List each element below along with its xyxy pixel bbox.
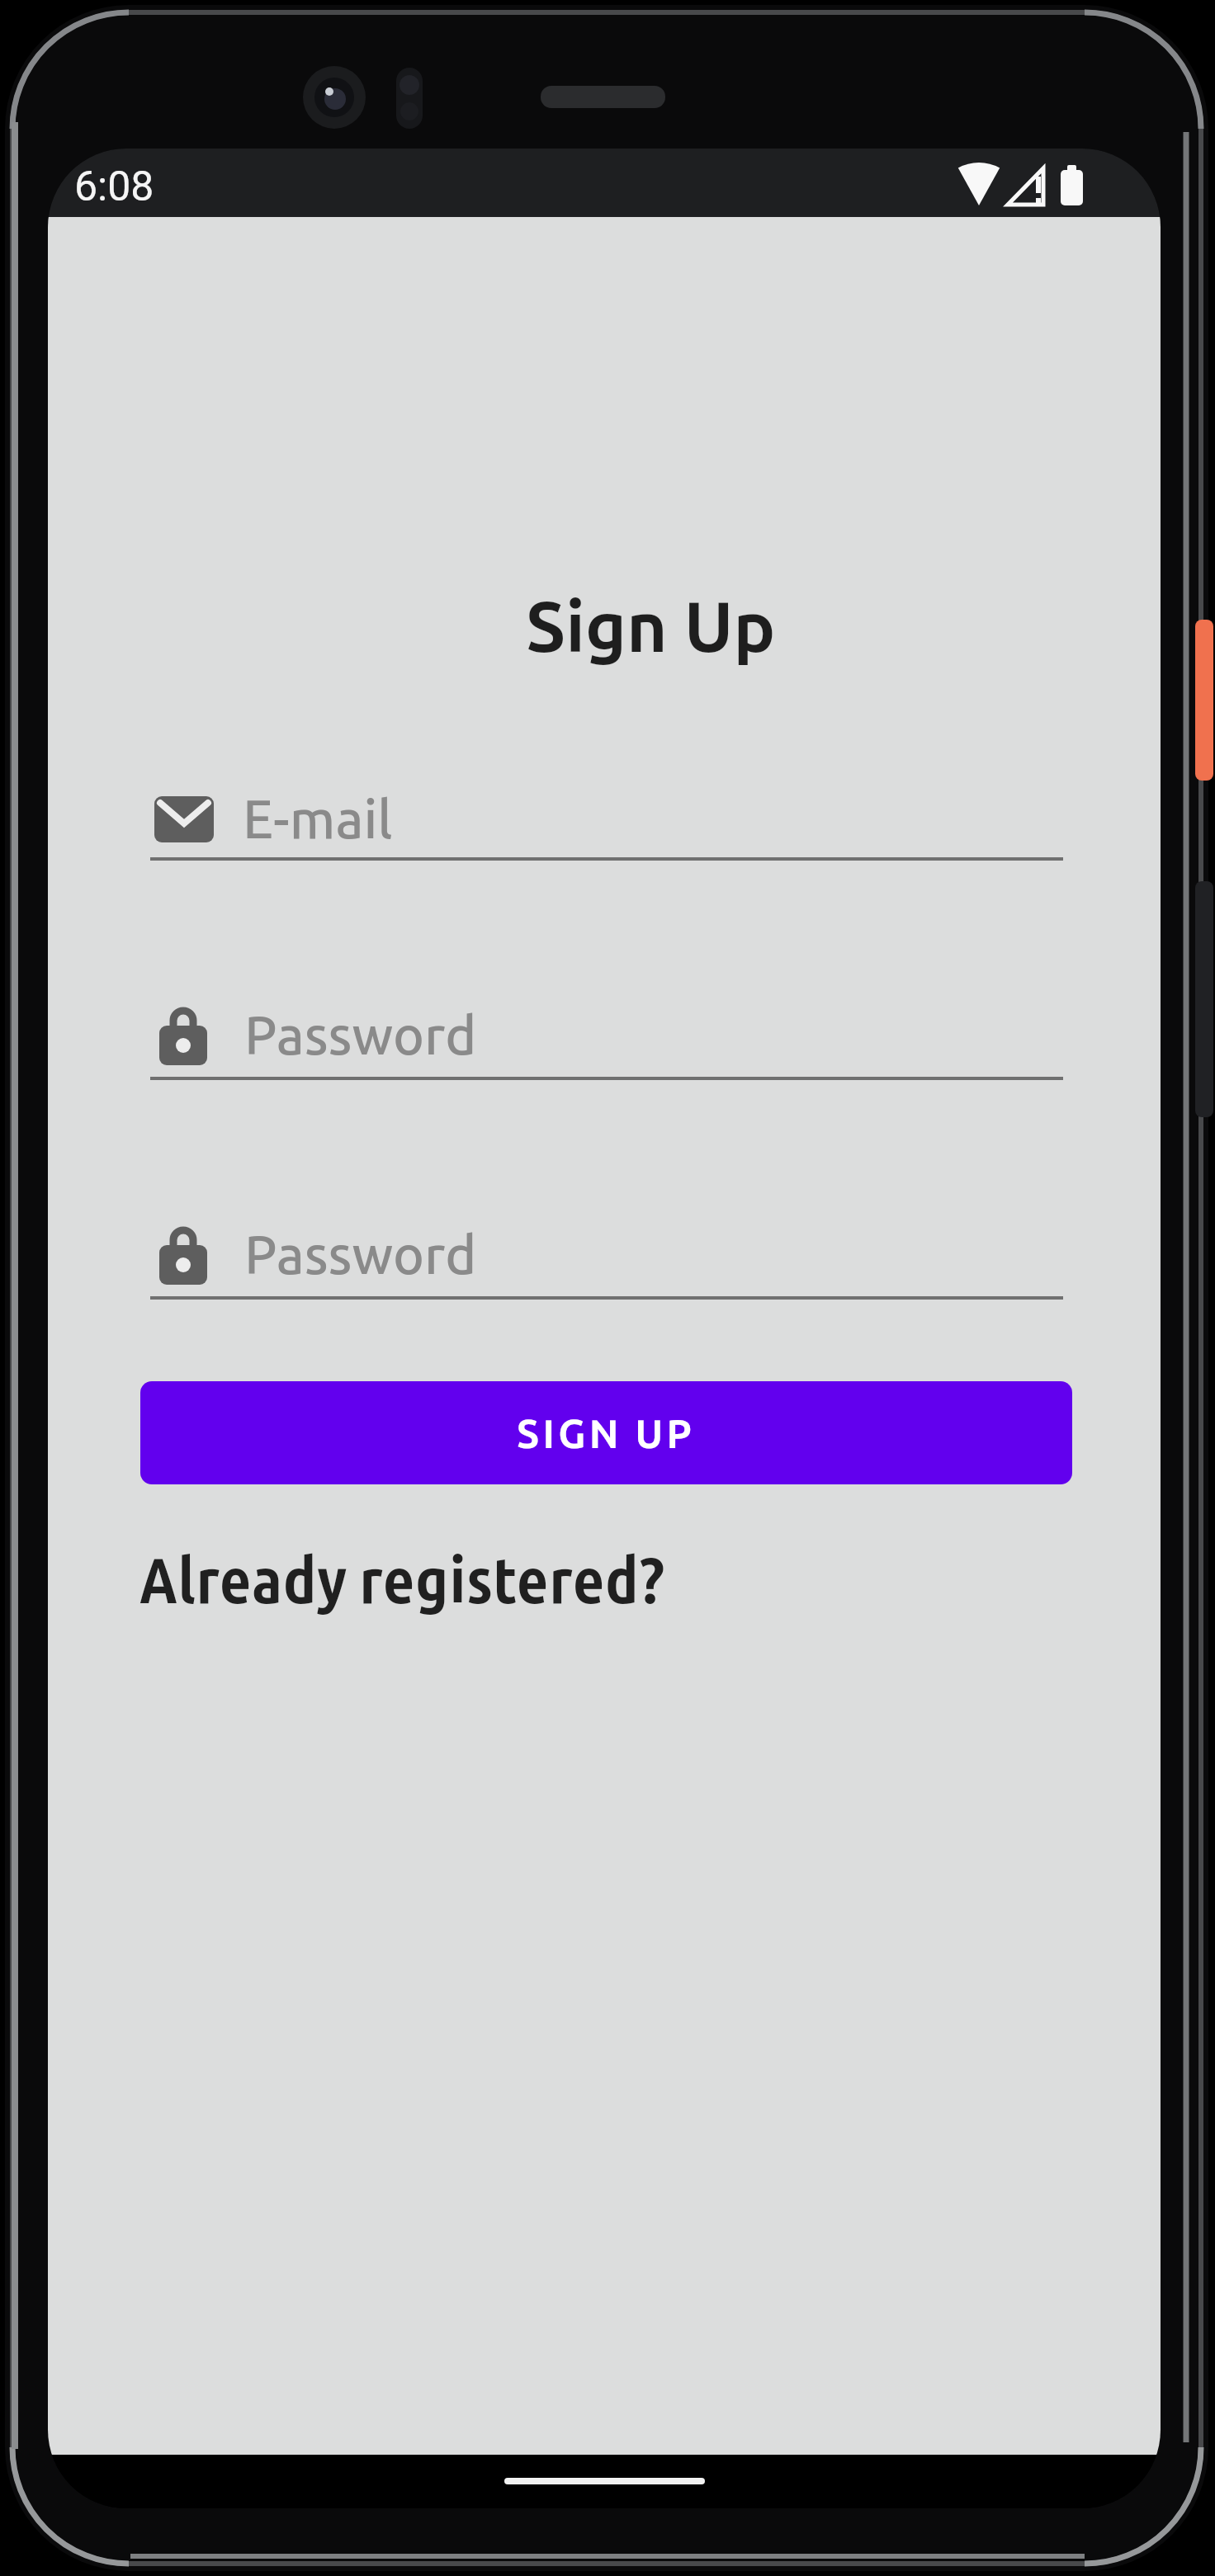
staticText: E-mail: [243, 787, 393, 848]
button[interactable]: Already registered?: [139, 1543, 665, 1615]
button[interactable]: [150, 784, 1063, 862]
button[interactable]: [150, 1003, 1063, 1082]
staticText: SIGN UP: [517, 1411, 696, 1455]
button[interactable]: [150, 1223, 1063, 1301]
staticText: 6:08: [74, 163, 154, 211]
staticText: Password: [244, 1003, 477, 1064]
button[interactable]: SIGN UP: [140, 1381, 1072, 1484]
staticText: Password: [244, 1223, 477, 1284]
staticText: Sign Up: [526, 587, 776, 665]
